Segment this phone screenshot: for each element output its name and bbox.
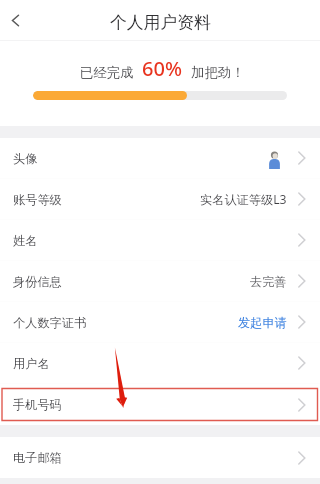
staticText: 手机号码 xyxy=(13,397,62,412)
staticText: 已经完成 xyxy=(80,64,134,81)
staticText: 加把劲！ xyxy=(191,64,245,81)
staticText: 个人用户资料 xyxy=(110,12,211,33)
button[interactable]: 用户名 xyxy=(0,343,320,384)
staticText: 个人数字证书 xyxy=(13,315,87,330)
button[interactable]: 账号等级 xyxy=(0,179,320,220)
staticText: 头像 xyxy=(13,151,38,166)
button[interactable]: 头像 xyxy=(0,138,320,179)
staticText: 电子邮箱 xyxy=(13,450,62,465)
staticText: 实名认证等级L3 xyxy=(200,191,287,208)
staticText: 身份信息 xyxy=(13,274,62,289)
staticText: 账号等级 xyxy=(13,192,62,207)
staticText: 去完善 xyxy=(250,274,287,289)
button[interactable]: Back xyxy=(2,7,28,33)
button[interactable]: 个人数字证书 xyxy=(0,302,320,343)
staticText: 用户名 xyxy=(13,356,50,371)
button[interactable]: 身份信息 xyxy=(0,261,320,302)
staticText: 发起申请 xyxy=(238,315,287,330)
staticText: 60% xyxy=(142,55,182,82)
button[interactable]: 电子邮箱 xyxy=(0,437,320,478)
staticText: 姓名 xyxy=(13,233,38,248)
button[interactable]: 姓名 xyxy=(0,220,320,261)
button[interactable]: 手机号码 xyxy=(0,384,320,425)
